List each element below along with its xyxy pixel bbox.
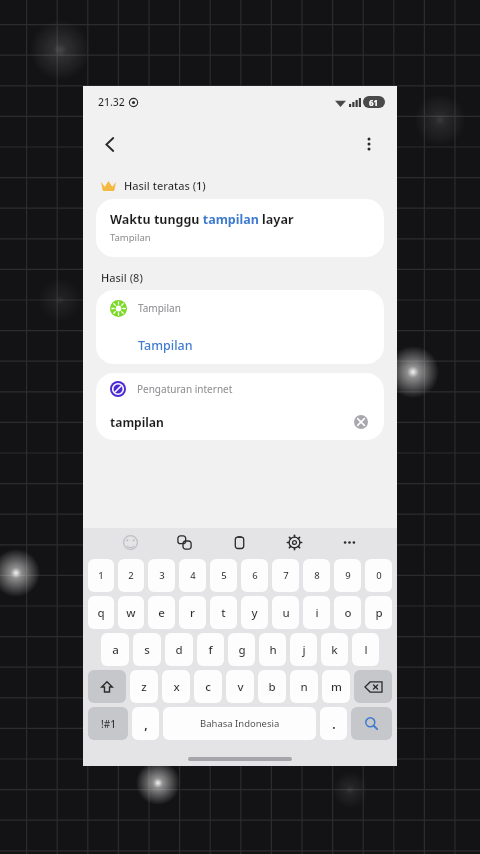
button[interactable]: w — [118, 596, 144, 629]
staticText: y — [251, 605, 258, 621]
staticText: tampilan — [110, 414, 348, 430]
button[interactable]: 6 — [241, 559, 268, 592]
staticText: m — [331, 679, 342, 695]
staticText: w — [126, 605, 136, 621]
button[interactable]: g — [228, 633, 255, 666]
staticText: Waktu tunggu tampilan layar — [110, 211, 294, 228]
button[interactable]: 5 — [210, 559, 237, 592]
button[interactable]: More — [322, 528, 377, 557]
button[interactable]: t — [210, 596, 237, 629]
staticText: , — [144, 716, 148, 732]
staticText: Hasil (8) — [101, 270, 143, 285]
button[interactable]: h — [259, 633, 286, 666]
staticText: 8 — [314, 569, 320, 582]
button[interactable]: !#1 — [88, 707, 128, 740]
staticText: x — [173, 679, 180, 695]
button[interactable]: c — [194, 670, 222, 703]
staticText: Hasil teratas (1) — [124, 178, 206, 193]
staticText: r — [190, 605, 195, 621]
staticText: 7 — [283, 569, 289, 582]
staticText: v — [237, 679, 244, 695]
button[interactable]: 2 — [118, 559, 144, 592]
button[interactable]: m — [322, 670, 350, 703]
button[interactable]: d — [165, 633, 193, 666]
button[interactable]: Emoji — [103, 528, 157, 557]
staticText: f — [208, 642, 213, 658]
button[interactable]: 9 — [334, 559, 361, 592]
staticText: t — [221, 605, 226, 621]
staticText: Pengaturan internet — [137, 382, 233, 396]
staticText: s — [144, 642, 150, 658]
staticText: b — [268, 679, 276, 695]
button[interactable]: l — [352, 633, 379, 666]
button[interactable]: More options — [347, 122, 391, 166]
staticText: n — [300, 679, 308, 695]
button[interactable]: Back — [88, 122, 132, 166]
button[interactable]: Tampilan — [96, 290, 384, 326]
button[interactable]: 8 — [303, 559, 330, 592]
staticText: c — [205, 679, 211, 695]
staticText: . — [332, 716, 336, 732]
button[interactable]: 3 — [148, 559, 175, 592]
staticText: Tampilan — [110, 231, 151, 244]
button[interactable]: Tampilan — [96, 326, 384, 364]
button[interactable]: Search — [351, 707, 392, 740]
staticText: 1 — [98, 569, 104, 582]
button[interactable]: . — [320, 707, 347, 740]
button[interactable]: x — [162, 670, 190, 703]
button[interactable]: 0 — [365, 559, 392, 592]
button[interactable]: Waktu tunggu tampilan layar — [96, 199, 384, 257]
button[interactable]: i — [303, 596, 330, 629]
button[interactable]: u — [272, 596, 299, 629]
button[interactable]: e — [148, 596, 175, 629]
staticText: 3 — [159, 569, 165, 582]
button[interactable]: q — [88, 596, 114, 629]
staticText: z — [141, 679, 147, 695]
button[interactable]: Shift — [88, 670, 126, 703]
button[interactable]: , — [132, 707, 159, 740]
staticText: a — [112, 642, 119, 658]
button[interactable]: s — [133, 633, 161, 666]
button[interactable]: Pengaturan internet — [96, 373, 384, 404]
staticText: 61 — [369, 97, 379, 108]
staticText: Tampilan — [138, 301, 181, 315]
button[interactable]: a — [101, 633, 129, 666]
button[interactable]: k — [321, 633, 348, 666]
button[interactable]: Bahasa Indonesia — [163, 707, 316, 740]
button[interactable]: Settings — [267, 528, 322, 557]
staticText: Tampilan — [138, 337, 193, 354]
staticText: k — [331, 642, 338, 658]
button[interactable]: 7 — [272, 559, 299, 592]
button[interactable]: b — [258, 670, 286, 703]
button[interactable]: y — [241, 596, 268, 629]
button[interactable]: 4 — [179, 559, 206, 592]
button[interactable]: n — [290, 670, 318, 703]
staticText: 21.32 — [98, 95, 125, 109]
staticText: i — [315, 605, 319, 621]
button[interactable]: Clipboard — [212, 528, 267, 557]
button[interactable]: Translate — [157, 528, 212, 557]
staticText: d — [175, 642, 183, 658]
staticText: 6 — [252, 569, 258, 582]
button[interactable]: f — [197, 633, 224, 666]
staticText: q — [97, 605, 105, 621]
button[interactable]: Clear text — [348, 409, 374, 435]
staticText: h — [269, 642, 277, 658]
staticText: j — [302, 642, 306, 658]
staticText: 4 — [190, 569, 196, 582]
button[interactable]: r — [179, 596, 206, 629]
staticText: !#1 — [101, 717, 116, 731]
staticText: e — [158, 605, 165, 621]
staticText: Bahasa Indonesia — [200, 717, 280, 730]
staticText: 5 — [221, 569, 227, 582]
staticText: g — [238, 642, 246, 658]
button[interactable]: Backspace — [354, 670, 392, 703]
button[interactable]: j — [290, 633, 317, 666]
button[interactable]: p — [365, 596, 392, 629]
staticText: 2 — [128, 569, 134, 582]
button[interactable]: o — [334, 596, 361, 629]
button[interactable]: v — [226, 670, 254, 703]
button[interactable]: 1 — [88, 559, 114, 592]
staticText: p — [375, 605, 383, 621]
button[interactable]: z — [130, 670, 158, 703]
